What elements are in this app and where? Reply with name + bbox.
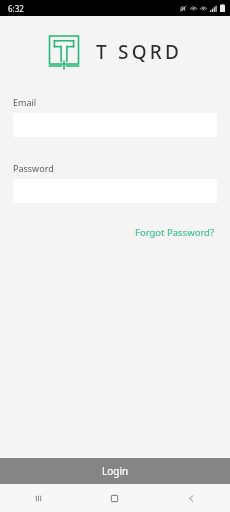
button[interactable]: Back	[153, 484, 230, 512]
staticText: T SQRD	[96, 39, 183, 65]
staticText: 6:32	[8, 3, 24, 14]
staticText: Password	[13, 162, 54, 174]
button[interactable]: Recent apps	[0, 484, 76, 512]
staticText: Email	[13, 96, 37, 108]
staticText: Forgot Password?	[135, 226, 215, 239]
button[interactable]: Home	[76, 484, 153, 512]
button[interactable]: Login	[0, 458, 230, 484]
button[interactable]: Forgot Password?	[133, 223, 217, 242]
staticText: Login	[102, 464, 129, 478]
